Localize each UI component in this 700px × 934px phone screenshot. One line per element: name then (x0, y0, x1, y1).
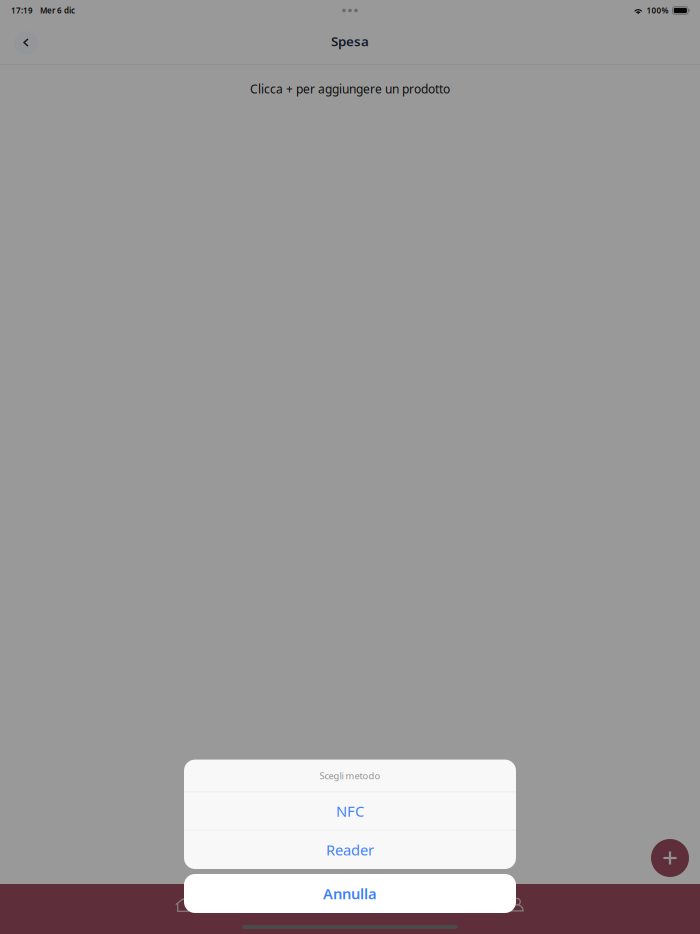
button[interactable]: Lists (328, 894, 372, 916)
staticText: Spesa (331, 32, 369, 50)
staticText: Mer 6 dic (40, 5, 75, 16)
staticText: 100% (647, 5, 669, 16)
button[interactable]: Home (161, 894, 205, 916)
staticText: Scegli metodo (319, 769, 380, 782)
button[interactable]: Back (14, 31, 38, 55)
staticText: Clicca + per aggiungere un prodotto (250, 81, 450, 97)
button[interactable]: Annulla (184, 874, 516, 913)
button[interactable]: Reader (184, 830, 516, 869)
staticText: Annulla (323, 884, 377, 903)
button[interactable]: Profile (495, 894, 539, 916)
staticText: NFC (336, 801, 364, 821)
button[interactable]: NFC (184, 792, 516, 830)
button[interactable]: Add product (651, 839, 689, 877)
staticText: 17:19 (11, 5, 33, 16)
staticText: Reader (326, 840, 374, 859)
